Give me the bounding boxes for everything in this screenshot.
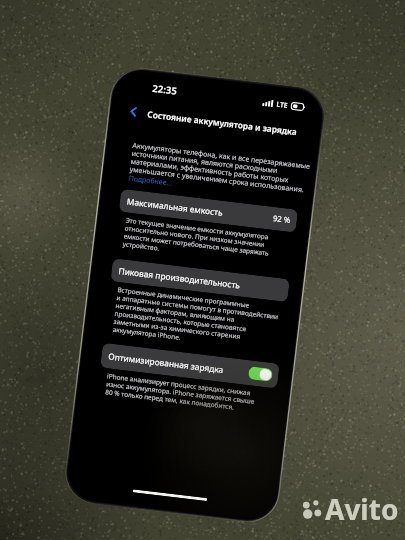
button[interactable]: Максимальная емкость <box>119 189 298 233</box>
staticText: LTE <box>276 99 289 110</box>
button[interactable]: Пиковая производительность <box>110 258 290 302</box>
staticText: Аккумуляторы телефона, как и все перезар… <box>129 141 311 195</box>
staticText: Максимальная емкость <box>126 195 224 218</box>
button[interactable]: Назад <box>124 102 144 122</box>
staticText: Avito <box>325 490 399 528</box>
staticText: Пиковая производительность <box>118 265 241 290</box>
button[interactable]: Оптимизированная зарядка <box>248 366 273 382</box>
staticText: 22:35 <box>152 82 178 98</box>
staticText: Встроенные динамические программные и ап… <box>112 285 280 353</box>
button[interactable]: Подробнее... <box>128 174 173 189</box>
staticText: Это текущее значение емкости аккумулятор… <box>122 215 271 266</box>
button[interactable]: Оптимизированная зарядка <box>100 343 280 389</box>
staticText: Оптимизированная зарядка <box>108 350 224 375</box>
staticText: 92 % <box>272 213 291 226</box>
staticText: Состояние аккумулятора и зарядка <box>147 108 298 137</box>
staticText: iPhone анализирует процесс зарядки, сниж… <box>105 371 257 414</box>
